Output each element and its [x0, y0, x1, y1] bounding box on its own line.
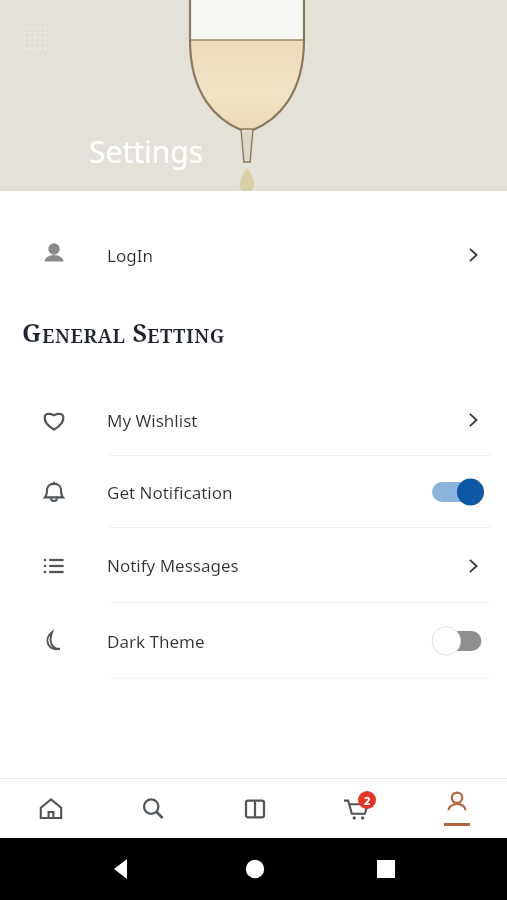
- staticText: Settings: [89, 131, 204, 172]
- staticText: 2: [364, 793, 371, 808]
- button[interactable]: Home: [0, 779, 102, 838]
- other: Get Notification toggle on: [432, 479, 484, 505]
- staticText: Dark Theme: [107, 630, 205, 653]
- button[interactable]: Profile: [406, 779, 507, 838]
- staticText: ETTING: [147, 323, 226, 349]
- staticText: My Wishlist: [107, 409, 198, 432]
- button[interactable]: Search: [102, 779, 204, 838]
- staticText: ENERAL: [42, 323, 126, 349]
- other: Open: [462, 555, 484, 577]
- staticText: Notify Messages: [107, 554, 239, 577]
- staticText: LogIn: [107, 244, 153, 267]
- other: Open: [462, 409, 484, 431]
- other: Open: [462, 244, 484, 266]
- button[interactable]: Notify Messages: [0, 528, 507, 603]
- button[interactable]: Catalog: [204, 779, 305, 838]
- button[interactable]: LogIn: [0, 224, 507, 286]
- button[interactable]: Cart, 2 items: [305, 779, 406, 838]
- staticText: Get Notification: [107, 481, 233, 504]
- button[interactable]: My Wishlist: [0, 384, 507, 456]
- staticText: G: [22, 315, 42, 349]
- staticText: S: [126, 315, 147, 349]
- button[interactable]: Dark Theme: [0, 603, 507, 679]
- button[interactable]: Get Notification: [0, 456, 507, 528]
- other: Dark Theme toggle off: [432, 628, 484, 654]
